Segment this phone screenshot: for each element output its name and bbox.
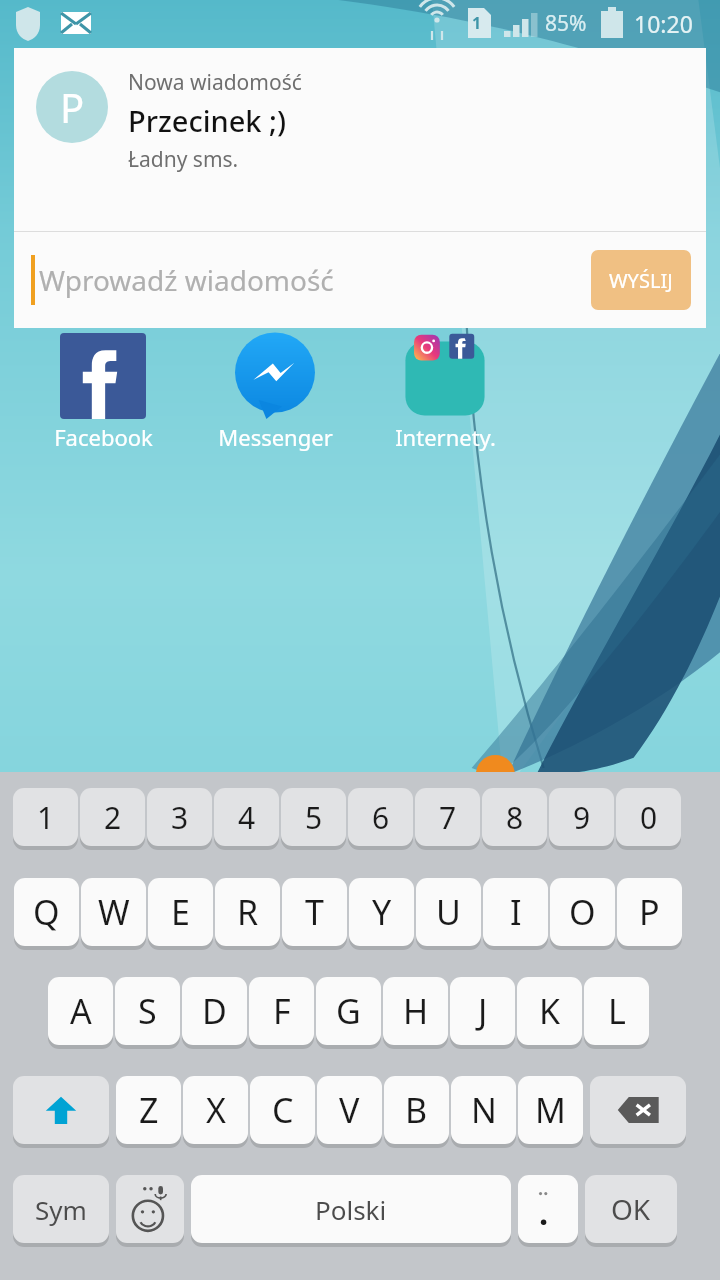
button[interactable]: T [282, 878, 347, 951]
staticText: Z [139, 1087, 159, 1133]
staticText: 10:20 [634, 8, 693, 39]
staticText: X [206, 1087, 226, 1133]
button[interactable]: F [249, 977, 314, 1050]
staticText: U [436, 889, 461, 935]
button[interactable]: Period [518, 1175, 578, 1248]
button[interactable]: M [518, 1076, 583, 1149]
staticText: F [273, 988, 291, 1034]
button[interactable]: O [550, 878, 615, 951]
button[interactable]: X [183, 1076, 248, 1149]
staticText: Messenger [218, 422, 333, 452]
button[interactable]: P [617, 878, 682, 951]
staticText: 6 [372, 797, 390, 838]
button[interactable]: 4 [214, 788, 279, 851]
staticText: Facebook [54, 422, 153, 452]
button[interactable]: 1 [13, 788, 78, 851]
staticText: 4 [238, 797, 256, 838]
button[interactable]: W [81, 878, 146, 951]
staticText: Sym [35, 1192, 87, 1227]
button[interactable]: 2 [80, 788, 145, 851]
staticText: H [403, 988, 429, 1034]
button[interactable]: 7 [415, 788, 480, 851]
staticText: Wprowadź wiadomość [39, 261, 334, 299]
staticText: E [171, 889, 190, 935]
staticText: D [202, 988, 227, 1034]
staticText: P [60, 80, 85, 134]
staticText: I [510, 889, 522, 935]
button[interactable]: K [517, 977, 582, 1050]
button[interactable]: V [317, 1076, 382, 1149]
button[interactable]: Z [116, 1076, 181, 1149]
button[interactable]: Q [14, 878, 79, 951]
button[interactable]: WYŚLIJ [591, 250, 691, 310]
button[interactable]: 5 [281, 788, 346, 851]
button[interactable]: J [450, 977, 515, 1050]
staticText: O [569, 889, 596, 935]
button[interactable]: C [250, 1076, 315, 1149]
button[interactable]: Y [349, 878, 414, 951]
button[interactable]: Polski [191, 1175, 511, 1248]
staticText: P [639, 889, 660, 935]
button[interactable]: Emoji and voice input [116, 1175, 184, 1248]
staticText: 1 [472, 12, 482, 34]
button[interactable]: H [383, 977, 448, 1050]
staticText: J [478, 988, 488, 1034]
staticText: R [237, 889, 259, 935]
staticText: C [272, 1087, 294, 1133]
staticText: 3 [171, 797, 189, 838]
staticText: Q [33, 889, 60, 935]
staticText: N [471, 1087, 497, 1133]
staticText: 5 [305, 797, 323, 838]
button[interactable]: Sym [13, 1175, 109, 1248]
staticText: Polski [315, 1192, 387, 1227]
button[interactable]: Wprowadź wiadomość [14, 232, 591, 328]
button[interactable]: P [14, 48, 706, 231]
staticText: M [535, 1087, 566, 1133]
button[interactable]: Facebook [28, 332, 178, 452]
staticText: K [539, 988, 561, 1034]
button[interactable]: D [182, 977, 247, 1050]
staticText: S [138, 988, 157, 1034]
staticText: 9 [573, 797, 591, 838]
button[interactable]: Shift [13, 1076, 109, 1149]
button[interactable]: B [384, 1076, 449, 1149]
button[interactable]: OK [585, 1175, 677, 1248]
button[interactable]: Internety. [370, 332, 520, 452]
button[interactable]: L [584, 977, 649, 1050]
staticText: W [98, 889, 130, 935]
staticText: V [339, 1087, 360, 1133]
button[interactable]: 0 [616, 788, 681, 851]
staticText: Y [372, 889, 392, 935]
button[interactable]: N [451, 1076, 516, 1149]
button[interactable]: Backspace [590, 1076, 686, 1149]
button[interactable]: G [316, 977, 381, 1050]
staticText: Nowa wiadomość [128, 68, 302, 97]
button[interactable]: U [416, 878, 481, 951]
button[interactable]: 3 [147, 788, 212, 851]
staticText: 1 [37, 797, 55, 838]
staticText: A [70, 988, 92, 1034]
staticText: 85% [545, 9, 587, 38]
staticText: WYŚLIJ [609, 267, 673, 294]
staticText: OK [611, 1190, 651, 1228]
button[interactable]: 6 [348, 788, 413, 851]
staticText: G [336, 988, 361, 1034]
button[interactable]: A [48, 977, 113, 1050]
staticText: T [305, 889, 324, 935]
staticText: B [405, 1087, 428, 1133]
button[interactable]: E [148, 878, 213, 951]
button[interactable]: Messenger [200, 332, 350, 452]
button[interactable]: S [115, 977, 180, 1050]
button[interactable]: 9 [549, 788, 614, 851]
staticText: Przecinek ;) [128, 101, 287, 140]
button[interactable]: R [215, 878, 280, 951]
staticText: Internety. [395, 422, 496, 452]
staticText: L [608, 988, 626, 1034]
staticText: 2 [104, 797, 122, 838]
staticText: 8 [506, 797, 524, 838]
staticText: 0 [640, 797, 658, 838]
staticText: 7 [439, 797, 457, 838]
staticText: Ładny sms. [128, 145, 239, 174]
button[interactable]: 8 [482, 788, 547, 851]
button[interactable]: I [483, 878, 548, 951]
